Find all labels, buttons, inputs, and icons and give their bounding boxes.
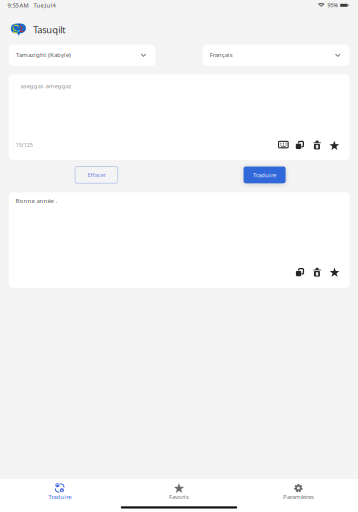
button[interactable]: Copy (293, 138, 306, 151)
staticText: 9:55 AM (7, 1, 28, 9)
button[interactable]: Clear translation (311, 265, 323, 279)
staticText: Tue Jul 4 (33, 1, 55, 9)
staticText: Traduire (253, 171, 276, 179)
staticText: 95% (327, 1, 338, 9)
staticText: Effacer (87, 171, 105, 179)
button[interactable]: Traduire (0, 479, 119, 512)
staticText: aseggas ameggaz (20, 82, 71, 90)
staticText: 15/125 (15, 141, 32, 149)
button[interactable]: Add to favourites (327, 265, 342, 279)
button[interactable]: Français (203, 44, 350, 66)
button[interactable]: Effacer (75, 166, 118, 183)
button[interactable]: Traduire (244, 166, 286, 183)
button[interactable]: Paramètres (239, 479, 358, 512)
button[interactable]: Clear text (311, 138, 323, 152)
staticText: Favoris (169, 492, 189, 501)
button[interactable]: Keyboard (276, 138, 291, 151)
staticText: Paramètres (283, 492, 314, 501)
button[interactable]: Favoris (119, 479, 239, 512)
button[interactable]: Copy (293, 266, 307, 279)
button[interactable]: Add to favourites (327, 138, 342, 152)
staticText: Tamazight (Kabyle) (16, 51, 71, 59)
staticText: Tasuqilt (33, 23, 65, 36)
button[interactable]: Tamazight (Kabyle) (9, 44, 155, 66)
staticText: Traduire (48, 492, 71, 501)
staticText: Bonne année . (15, 196, 57, 205)
staticText: Français (210, 51, 233, 59)
